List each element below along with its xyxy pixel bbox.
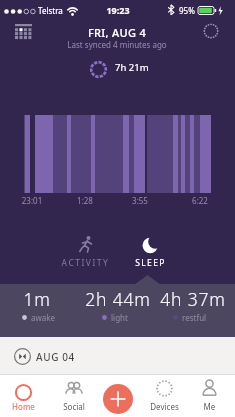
staticText: 6:22: [130, 195, 235, 206]
staticText: 3:55: [70, 195, 210, 206]
staticText: AUG 04: [36, 350, 75, 364]
button[interactable]: Me: [189, 376, 230, 416]
staticText: 2h 44m: [48, 287, 188, 311]
staticText: 4h 37m: [123, 287, 235, 311]
staticText: 23:01: [0, 195, 102, 206]
staticText: restful: [182, 312, 207, 323]
staticText: 19:23: [48, 4, 188, 16]
staticText: Last synced 4 minutes ago: [47, 39, 187, 50]
staticText: Devices: [142, 401, 187, 412]
staticText: Me: [189, 401, 230, 412]
button[interactable]: Social: [52, 376, 96, 416]
button[interactable]: Home: [3, 376, 44, 416]
staticText: ACTIVITY: [50, 257, 121, 269]
button[interactable]: SLEEP: [121, 232, 180, 274]
staticText: FRI, AUG 4: [47, 25, 187, 40]
staticText: light: [111, 312, 128, 323]
button[interactable]: ACTIVITY: [50, 232, 121, 274]
staticText: SLEEP: [121, 257, 180, 269]
staticText: 95%: [179, 5, 195, 16]
staticText: Home: [3, 401, 44, 412]
staticText: Telstra: [38, 5, 63, 16]
staticText: awake: [31, 312, 56, 323]
button[interactable]: AUG 04: [0, 337, 235, 374]
button[interactable]: [103, 384, 133, 414]
staticText: 1:28: [15, 195, 155, 206]
button[interactable]: Devices: [142, 376, 187, 416]
button[interactable]: [15, 24, 32, 39]
staticText: Social: [52, 401, 96, 412]
staticText: 1m: [0, 287, 107, 311]
staticText: 7h 21m: [115, 61, 149, 74]
button[interactable]: [203, 23, 219, 39]
